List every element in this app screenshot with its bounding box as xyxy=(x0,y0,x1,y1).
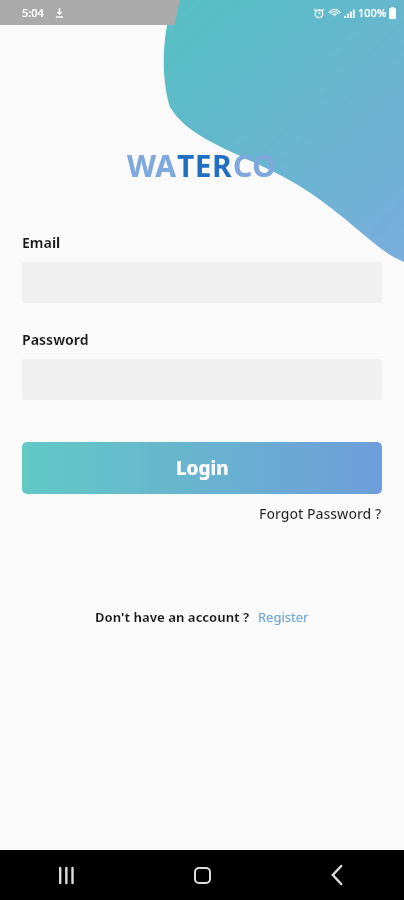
staticText: 5:04 xyxy=(22,5,44,20)
button[interactable]: Recent apps xyxy=(43,851,91,899)
staticText: CO xyxy=(233,145,277,186)
staticText: Email xyxy=(22,233,61,252)
staticText: 100% xyxy=(358,5,387,20)
staticText: TER xyxy=(177,145,233,186)
staticText: Login xyxy=(176,455,229,481)
button[interactable]: Login xyxy=(22,442,382,494)
button[interactable]: Forgot Password ? xyxy=(259,504,382,523)
staticText: WA xyxy=(127,145,177,186)
button[interactable]: Home xyxy=(178,851,226,899)
staticText: Password xyxy=(22,330,89,349)
button[interactable]: Register xyxy=(258,608,309,626)
staticText: Don't have an account ? xyxy=(95,608,250,626)
button[interactable]: Back xyxy=(313,851,361,899)
